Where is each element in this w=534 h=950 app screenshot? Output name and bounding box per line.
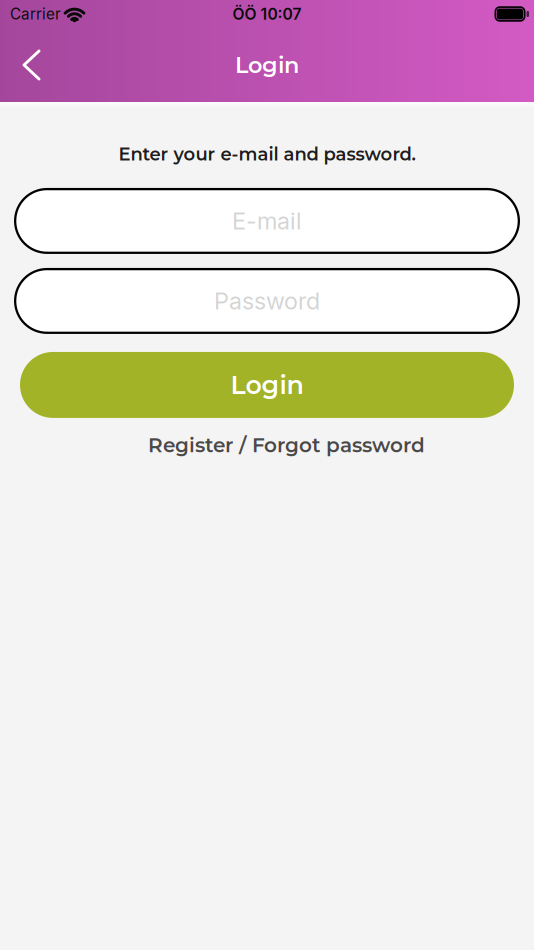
staticText: E-mail — [232, 207, 302, 235]
staticText: ÖÖ 10:07 — [232, 5, 301, 23]
staticText: Login — [230, 369, 303, 400]
button[interactable]: Password — [14, 268, 520, 334]
staticText: Password — [214, 287, 320, 315]
staticText: Enter your e-mail and password. — [118, 143, 415, 165]
button[interactable]: Login — [20, 352, 514, 418]
staticText: Register / Forgot password — [148, 433, 425, 457]
button[interactable]: E-mail — [14, 188, 520, 254]
button[interactable]: Back — [0, 31, 55, 99]
button[interactable]: Register / Forgot password — [128, 433, 405, 457]
staticText: Login — [235, 51, 299, 79]
staticText: Carrier — [10, 5, 61, 23]
